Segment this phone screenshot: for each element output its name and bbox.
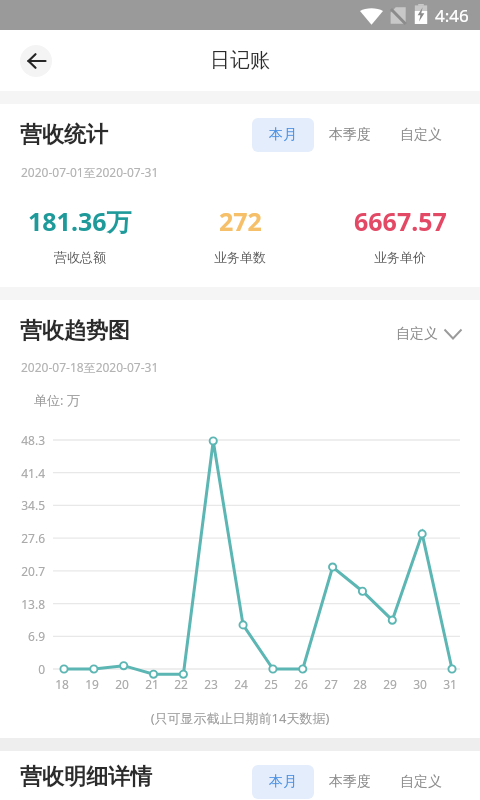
staticText: 41.4 [0,465,45,481]
staticText: 0 [0,661,45,677]
staticText: 业务单数 [214,249,266,265]
staticText: 21 [138,676,166,692]
staticText: 本季度 [329,126,371,144]
button[interactable]: 本季度 [314,765,385,799]
staticText: 2020-07-18至2020-07-31 [21,359,159,375]
staticText: 28 [346,676,374,692]
staticText: 本月 [269,773,297,791]
staticText: 23 [197,676,225,692]
staticText: 自定义 [396,325,438,343]
staticText: 6.9 [0,628,45,644]
staticText: 27 [317,676,345,692]
staticText: 34.5 [0,497,45,513]
staticText: 自定义 [400,773,442,791]
staticText: 13.8 [0,596,45,612]
staticText: 29 [376,676,404,692]
staticText: 25 [257,676,285,692]
staticText: 22 [167,676,195,692]
button[interactable]: 自定义 [385,766,480,798]
staticText: 业务单价 [374,249,426,265]
button[interactable]: 本月 [252,765,314,799]
staticText: 24 [227,676,255,692]
button[interactable]: 自定义 [385,119,480,151]
button[interactable]: 本月 [252,118,314,152]
staticText: (只可显示截止日期前14天数据) [0,709,480,727]
staticText: 营收统计 [20,121,108,149]
staticText: 营收总额 [54,249,106,265]
staticText: 本季度 [329,773,371,791]
button[interactable]: Back [20,45,52,77]
staticText: 181.36万 [28,204,132,238]
staticText: 2020-07-01至2020-07-31 [21,164,159,180]
staticText: 19 [78,676,106,692]
staticText: 31 [436,676,464,692]
staticText: 20 [108,676,136,692]
staticText: 272 [219,204,262,238]
staticText: 26 [287,676,315,692]
button[interactable]: 本季度 [314,118,385,152]
staticText: 单位: 万 [34,391,80,409]
staticText: 自定义 [400,126,442,144]
staticText: 6667.57 [354,204,447,238]
staticText: 18 [48,676,76,692]
staticText: 30 [406,676,434,692]
staticText: 营收趋势图 [20,317,130,345]
staticText: 日记账 [210,48,270,73]
staticText: 20.7 [0,563,45,579]
button[interactable]: 自定义 [396,325,462,343]
staticText: 本月 [269,126,297,144]
staticText: 4:46 [435,4,469,27]
staticText: 48.3 [0,432,45,448]
staticText: 27.6 [0,530,45,546]
staticText: 营收明细详情 [20,763,152,791]
